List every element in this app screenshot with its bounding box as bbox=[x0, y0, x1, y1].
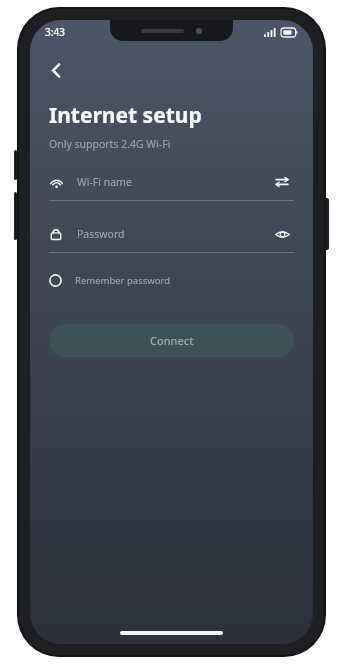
button[interactable]: Remember password bbox=[49, 267, 294, 294]
staticText: 3:43 bbox=[45, 25, 65, 39]
button[interactable]: Back bbox=[36, 50, 76, 90]
staticText: Wi-Fi name bbox=[77, 175, 132, 189]
staticText: Connect bbox=[150, 333, 194, 348]
button[interactable]: Wi-Fi name bbox=[49, 169, 294, 195]
button[interactable]: Choose network bbox=[270, 170, 294, 194]
staticText: Internet setup bbox=[49, 101, 202, 130]
button[interactable]: Show password bbox=[270, 222, 294, 246]
button[interactable]: Password bbox=[49, 221, 294, 247]
staticText: Password bbox=[77, 227, 125, 241]
staticText: Remember password bbox=[75, 274, 171, 287]
button[interactable]: Connect bbox=[49, 324, 294, 357]
staticText: Only supports 2.4G Wi-Fi bbox=[49, 137, 171, 151]
